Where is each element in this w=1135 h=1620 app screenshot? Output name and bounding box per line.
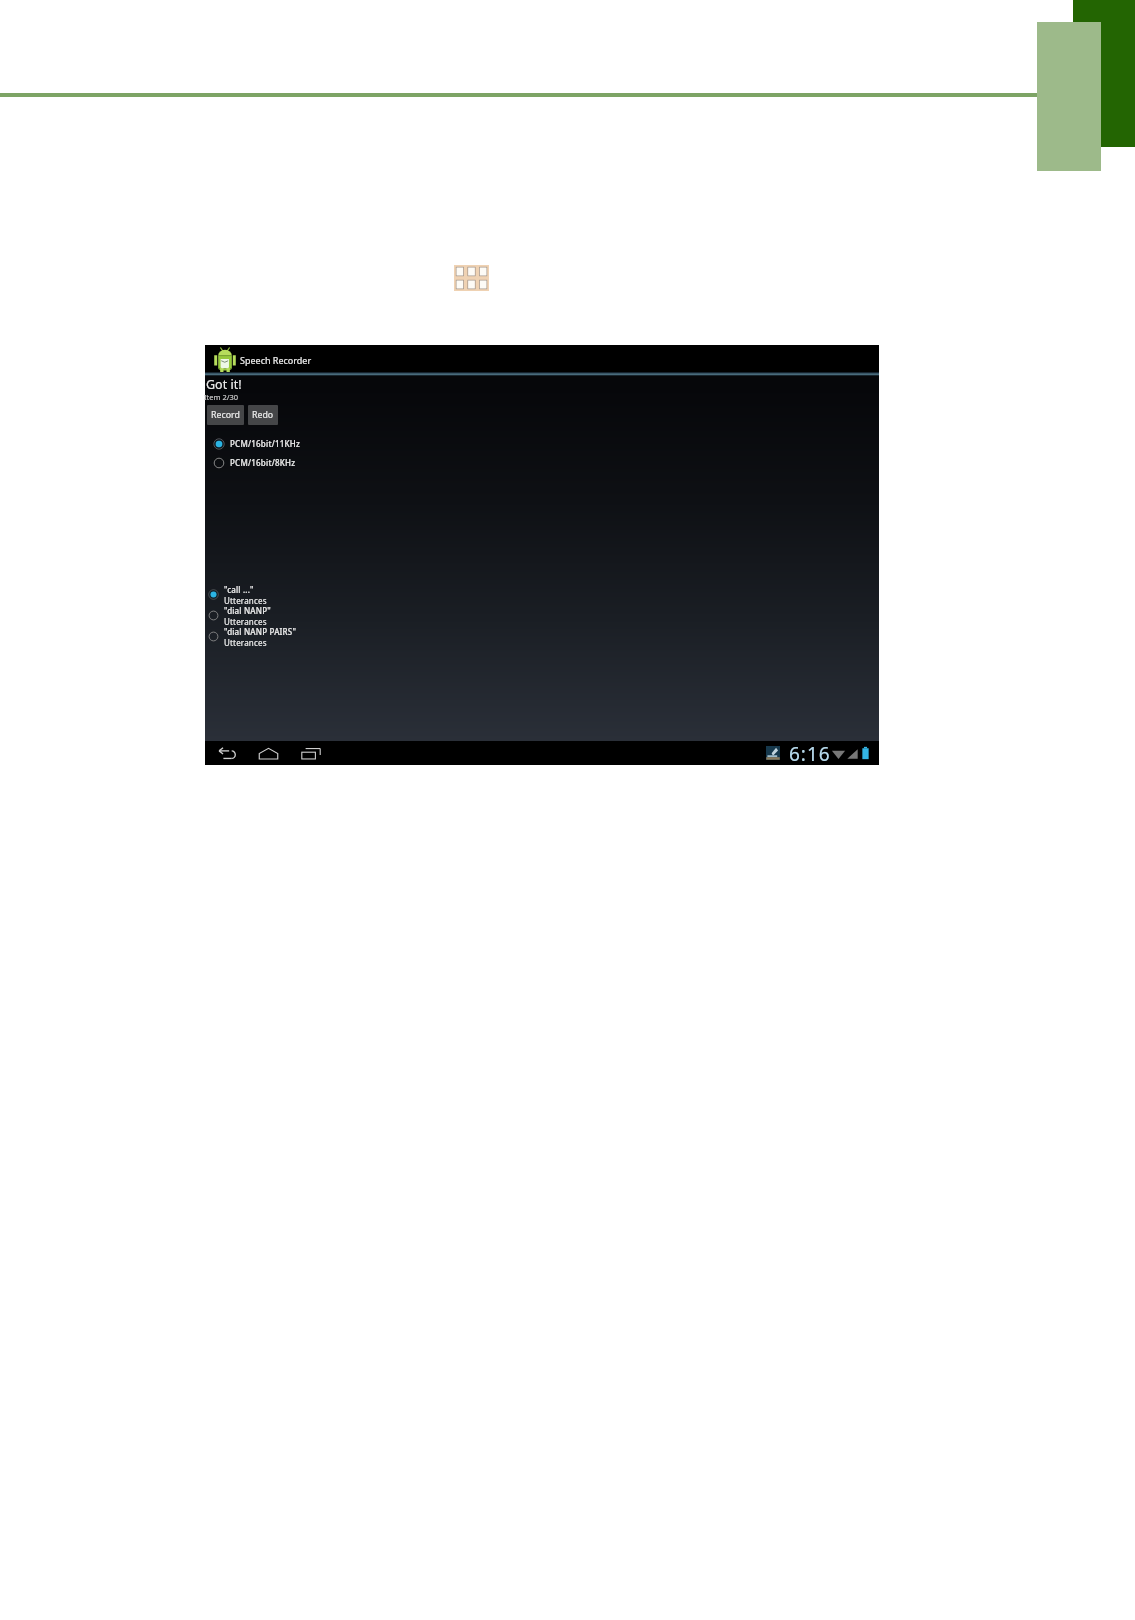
button[interactable]: Back bbox=[212, 741, 241, 765]
button[interactable]: "call ..." bbox=[208, 584, 267, 605]
staticText: Speech Recorder bbox=[240, 354, 312, 366]
button[interactable]: PCM/16bit/11KHz bbox=[213, 437, 301, 450]
staticText: PCM/16bit/8KHz bbox=[230, 457, 296, 468]
staticText: Utterances bbox=[224, 616, 267, 626]
staticText: "dial NANP" bbox=[224, 605, 271, 616]
staticText: "call ..." bbox=[224, 584, 254, 595]
staticText: "dial NANP PAIRS" bbox=[224, 626, 297, 637]
staticText: Utterances bbox=[224, 637, 267, 647]
button[interactable]: Recents bbox=[296, 741, 325, 765]
staticText: Redo bbox=[252, 409, 274, 421]
button[interactable]: "dial NANP" bbox=[208, 605, 271, 626]
staticText: Item 2/30 bbox=[204, 392, 239, 402]
button[interactable]: "dial NANP PAIRS" bbox=[208, 626, 297, 647]
button[interactable]: Redo bbox=[248, 405, 278, 425]
staticText: Got it! bbox=[206, 376, 242, 393]
staticText: 6:16 bbox=[789, 741, 831, 765]
button[interactable]: Record bbox=[207, 405, 244, 425]
staticText: PCM/16bit/11KHz bbox=[230, 438, 301, 449]
button[interactable]: Home bbox=[254, 741, 283, 765]
button[interactable]: PCM/16bit/8KHz bbox=[213, 456, 296, 469]
staticText: Utterances bbox=[224, 595, 267, 605]
staticText: Record bbox=[211, 409, 240, 421]
